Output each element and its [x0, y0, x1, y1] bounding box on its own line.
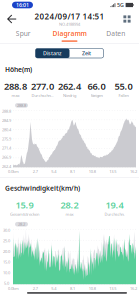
- staticText: 277.0: [31, 80, 54, 92]
- staticText: 25.0: [3, 238, 10, 243]
- staticText: 16.2: [130, 286, 137, 291]
- staticText: 0.0km: [8, 169, 19, 174]
- staticText: 262.4: [2, 164, 11, 169]
- staticText: Diagramm: [52, 29, 86, 38]
- staticText: 288.8: [4, 80, 27, 92]
- staticText: 19.4: [105, 199, 123, 211]
- staticText: 2.7: [33, 169, 38, 174]
- staticText: 10.8: [89, 169, 96, 174]
- staticText: 0.0km: [8, 286, 19, 291]
- staticText: Höhe(m): [5, 65, 32, 74]
- staticText: max: [11, 93, 19, 98]
- button[interactable]: Daten: [93, 28, 139, 43]
- staticText: 2.7: [33, 286, 38, 291]
- staticText: 2024/09/17 14:51: [34, 11, 104, 22]
- staticText: 10.8: [89, 286, 96, 291]
- staticText: max: [65, 212, 73, 217]
- staticText: 5.4: [51, 286, 56, 291]
- staticText: 30.0: [3, 227, 10, 233]
- staticText: 271.4: [2, 145, 11, 151]
- staticText: 66.0: [87, 80, 105, 92]
- staticText: Distanz: [43, 50, 62, 57]
- staticText: 284.9: [2, 118, 11, 123]
- staticText: Durchschn.: [104, 212, 124, 217]
- staticText: 55.0: [114, 80, 132, 92]
- button[interactable]: Back: [0, 10, 24, 28]
- staticText: 28.2: [60, 199, 78, 211]
- button[interactable]: Spur: [0, 28, 46, 43]
- staticText: Zeit: [82, 50, 91, 57]
- staticText: 13.5: [109, 169, 116, 174]
- staticText: 280.4: [2, 127, 11, 132]
- staticText: 16:01: [16, 1, 29, 9]
- staticText: Niedrig: [63, 93, 76, 98]
- staticText: 5.0: [4, 281, 9, 286]
- staticText: 262.4: [58, 80, 81, 92]
- staticText: Spur: [16, 29, 31, 38]
- staticText: 5.4: [51, 169, 56, 174]
- staticText: 15.0: [3, 259, 10, 265]
- button[interactable]: Distanz: [35, 48, 69, 58]
- staticText: 20.0: [3, 249, 10, 254]
- staticText: 28.2: [18, 222, 25, 227]
- staticText: Geschwindigkeit(km/h): [5, 184, 80, 193]
- staticText: Durchschn...: [31, 93, 53, 98]
- staticText: Fallen: [118, 93, 128, 98]
- button[interactable]: Diagramm: [46, 28, 93, 43]
- staticText: Steigen: [90, 93, 102, 98]
- staticText: 8.1: [70, 169, 75, 174]
- button[interactable]: Zeit: [69, 48, 103, 58]
- staticText: 10.0: [3, 270, 10, 275]
- staticText: Daten: [106, 29, 125, 38]
- staticText: 15.9: [15, 199, 33, 211]
- staticText: 5G: [117, 1, 124, 9]
- staticText: 275.9: [2, 136, 11, 141]
- staticText: 288.8: [2, 109, 11, 114]
- staticText: 16.2: [130, 169, 137, 174]
- staticText: 288.8: [17, 103, 26, 108]
- staticText: NO.4188994: [59, 22, 80, 27]
- staticText: 266.9: [2, 155, 11, 160]
- staticText: 8.1: [70, 286, 75, 291]
- button[interactable]: Menu: [115, 10, 139, 28]
- staticText: Gesamtstrecken: [10, 212, 39, 217]
- staticText: 13.5: [109, 286, 116, 291]
